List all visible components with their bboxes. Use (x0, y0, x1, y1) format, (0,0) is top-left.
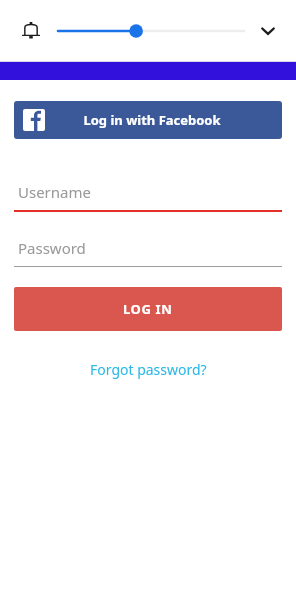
button[interactable]: LOG IN (14, 287, 282, 331)
button[interactable]: Forgot password? (82, 356, 215, 383)
button[interactable]: Username (14, 182, 282, 212)
button[interactable]: Volume slider (56, 14, 246, 48)
staticText: Password (18, 238, 86, 258)
staticText: Username (18, 182, 91, 202)
button[interactable]: Notifications (14, 14, 48, 48)
staticText: Forgot password? (90, 360, 207, 379)
staticText: LOG IN (123, 300, 173, 318)
staticText: Log in with Facebook (83, 111, 221, 129)
button[interactable]: Log in with Facebook (14, 101, 282, 139)
button[interactable]: Password (14, 238, 282, 267)
button[interactable]: Expand (252, 15, 284, 47)
